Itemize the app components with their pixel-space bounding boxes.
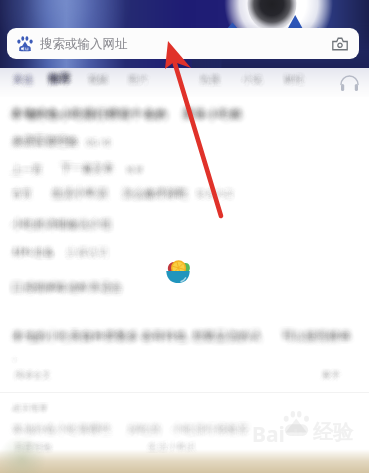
staticText: 本地特色小吃有哪些 — [17, 425, 116, 439]
staticText: 小说 — [247, 71, 267, 84]
staticText: 生活小常识 — [148, 439, 196, 451]
staticText: 展开 — [319, 366, 337, 377]
staticText: 小说 — [244, 77, 264, 90]
staticText: 好吃的 — [128, 427, 161, 441]
staticText: 材料准备 — [10, 249, 52, 262]
staticText: 热搜 — [199, 78, 219, 91]
staticText: 本地特色小吃有哪些 — [16, 418, 115, 432]
staticText: 小说 — [238, 73, 258, 86]
staticText: 美味小吃都 — [176, 105, 236, 120]
staticText: 图片 — [126, 70, 146, 83]
staticText: 小说 — [247, 73, 267, 86]
staticText: 视频 — [88, 73, 108, 86]
staticText: 材料准备 — [15, 249, 57, 262]
staticText: 推荐 — [124, 169, 142, 180]
staticText: 小吃排行榜推荐 — [174, 424, 251, 438]
staticText: 热搜 — [205, 72, 225, 85]
staticText: 小说 — [245, 73, 265, 86]
staticText: 怎么做才好吃 — [124, 182, 190, 196]
staticText: 阅读全文 — [13, 371, 49, 382]
staticText: 好吃的 — [128, 426, 161, 440]
staticText: 财经 — [280, 74, 300, 87]
staticText: 各有特色 — [144, 324, 190, 338]
staticText: 小吃的详细做法介绍 — [12, 215, 111, 229]
staticText: 财经 — [286, 77, 306, 90]
staticText: 下一篇文章 — [62, 158, 115, 171]
staticText: 小说 — [240, 75, 260, 88]
staticText: 展开 — [320, 370, 338, 381]
staticText: 生活小常识 — [151, 443, 199, 455]
staticText: 首页 — [8, 191, 28, 204]
staticText: 财经 — [283, 73, 303, 86]
staticText: 阅读全文 — [18, 371, 54, 382]
staticText: 热搜 — [201, 69, 221, 82]
button[interactable]: Camera search — [331, 35, 349, 53]
staticText: 推荐 — [47, 66, 70, 80]
staticText: 步骤说明 — [71, 245, 113, 258]
staticText: 好吃的 — [127, 418, 160, 432]
staticText: 本地特色小吃排行榜前十名的 — [12, 102, 168, 117]
staticText: 各有特色 — [137, 329, 183, 343]
staticText: 各有特色 — [143, 334, 189, 348]
staticText: 推荐 — [48, 76, 71, 90]
staticText: 推荐 — [51, 71, 74, 85]
staticText: 关注 — [17, 70, 37, 83]
staticText: 好吃的 — [131, 426, 164, 440]
staticText: 材料准备 — [17, 248, 59, 261]
staticText: 05-18 — [86, 137, 111, 150]
staticText: 小吃排行榜推荐 — [173, 418, 250, 432]
staticText: 上一页 — [16, 162, 46, 175]
staticText: 生活小常识 — [146, 443, 194, 455]
staticText: 来源百度经验 — [19, 137, 85, 151]
staticText: 关注 — [8, 69, 28, 82]
staticText: 步骤说明 — [69, 243, 111, 256]
staticText: 相关推荐 — [15, 405, 51, 416]
staticText: 图片 — [124, 73, 144, 86]
staticText: 上一页 — [8, 160, 38, 173]
staticText: 财经 — [283, 73, 303, 86]
staticText: 本地的小吃美食种类繁多 — [7, 327, 134, 341]
staticText: 想要品尝的话 — [187, 325, 256, 339]
staticText: 小吃排行榜推荐 — [171, 417, 248, 431]
staticText: 财经 — [286, 70, 306, 83]
staticText: 首页 — [11, 191, 31, 204]
staticText: 怎么做才好吃 — [121, 183, 187, 197]
staticText: 关注 — [7, 73, 27, 86]
staticText: 展开 — [323, 371, 341, 382]
staticText: 上一页 — [16, 165, 46, 178]
staticText: 本地特色小吃排行榜前十名的 — [12, 100, 168, 115]
staticText: 阅读全文 — [14, 373, 50, 384]
staticText: 阅读全文 — [10, 368, 46, 379]
staticText: 好吃的 — [125, 422, 158, 436]
staticText: 相关推荐 — [13, 400, 49, 411]
staticText: 步骤说明 — [63, 244, 105, 257]
staticText: 来源百度经验 — [14, 128, 80, 142]
staticText: 美味小吃都 — [184, 101, 244, 116]
staticText: 热搜 — [195, 74, 215, 87]
staticText: 口感细腻味道鲜美适合 — [14, 282, 124, 296]
staticText: 可以按照榜单 — [285, 323, 354, 337]
staticText: 图片 — [128, 78, 148, 91]
staticText: 推荐 — [49, 76, 72, 90]
staticText: 热搜 — [201, 71, 221, 84]
staticText: 生活小常识 — [58, 185, 113, 199]
staticText: 生活小常识 — [151, 442, 199, 454]
staticText: 视频 — [88, 75, 108, 88]
staticText: 步骤说明 — [65, 242, 107, 255]
staticText: 各有特色 — [139, 335, 185, 349]
staticText: 百度经验 — [12, 444, 50, 456]
staticText: 生活小常识 — [146, 441, 194, 453]
staticText: 美味小吃都 — [177, 109, 237, 124]
staticText: 小说 — [241, 69, 261, 82]
staticText: 视频 — [88, 74, 108, 87]
staticText: 口感细腻味道鲜美适合 — [11, 281, 121, 295]
staticText: 推荐 — [130, 162, 148, 173]
staticText: 怎么做才好吃 — [123, 187, 189, 201]
button[interactable]: 搜索或输入网址 — [7, 28, 359, 59]
staticText: 步骤说明 — [63, 250, 105, 263]
staticText: 本地的小吃美食种类繁多 — [13, 322, 140, 336]
